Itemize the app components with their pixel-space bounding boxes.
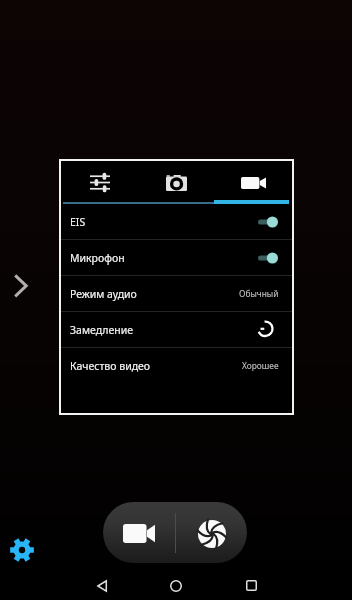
staticText: Режим аудио — [70, 287, 137, 301]
staticText: EIS — [70, 215, 86, 229]
button[interactable]: Качество видео — [61, 348, 292, 383]
staticText: Обычный — [239, 288, 279, 299]
button[interactable]: Record video — [103, 502, 175, 563]
button[interactable]: Режим аудио — [61, 276, 292, 311]
button[interactable]: Recents — [229, 571, 274, 600]
button[interactable]: Shutter — [175, 502, 247, 563]
button[interactable]: Back — [79, 571, 124, 600]
button[interactable]: EIS — [61, 204, 292, 239]
staticText: Замедление — [70, 323, 133, 337]
button[interactable]: Замедление — [61, 312, 292, 347]
button[interactable]: Home — [153, 571, 198, 600]
button[interactable]: Микрофон — [61, 240, 292, 275]
button[interactable]: Settings — [6, 534, 38, 566]
staticText: Качество видео — [70, 359, 151, 373]
staticText: Хорошее — [242, 360, 279, 371]
button[interactable]: Open panel — [2, 264, 42, 308]
staticText: Микрофон — [70, 251, 125, 265]
button[interactable]: Photo — [138, 161, 215, 204]
button[interactable]: Video — [215, 161, 292, 204]
button[interactable]: Adjust — [61, 161, 138, 204]
